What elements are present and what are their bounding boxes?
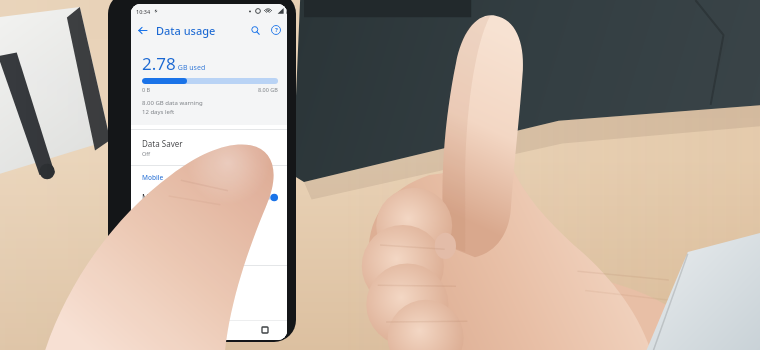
staticText: Mobile data bbox=[142, 192, 187, 203]
button[interactable]: Search bbox=[245, 20, 265, 40]
button[interactable]: Data Saver bbox=[131, 130, 287, 165]
button[interactable]: Recents bbox=[257, 322, 273, 338]
staticText: 8.00 GB bbox=[258, 86, 278, 93]
staticText: Data usage bbox=[156, 23, 216, 38]
button[interactable]: Back bbox=[131, 19, 153, 41]
button[interactable]: App data usage bbox=[131, 211, 287, 238]
staticText: 10:34 bbox=[136, 8, 151, 15]
staticText: Off bbox=[142, 150, 151, 157]
button[interactable]: Wi-Fi data usage bbox=[131, 284, 287, 319]
staticText: Data warning & limit bbox=[142, 246, 220, 257]
staticText: 2.78 bbox=[142, 52, 176, 75]
staticText: 0 B bbox=[142, 86, 151, 93]
staticText: ? bbox=[275, 26, 278, 34]
button[interactable]: Data warning & limit bbox=[131, 238, 287, 265]
button[interactable]: Mobile data bbox=[131, 184, 287, 211]
staticText: 12 days left bbox=[142, 108, 175, 116]
staticText: 45.57 GB used Aug 27 – Sep 24 bbox=[142, 304, 222, 311]
staticText: Data Saver bbox=[142, 138, 183, 149]
staticText: 8.00 GB data warning bbox=[142, 99, 203, 107]
staticText: GB used bbox=[176, 63, 206, 73]
staticText: Wi-Fi data usage bbox=[142, 292, 204, 303]
button[interactable]: Help bbox=[265, 19, 287, 41]
staticText: Mobile bbox=[142, 173, 164, 182]
